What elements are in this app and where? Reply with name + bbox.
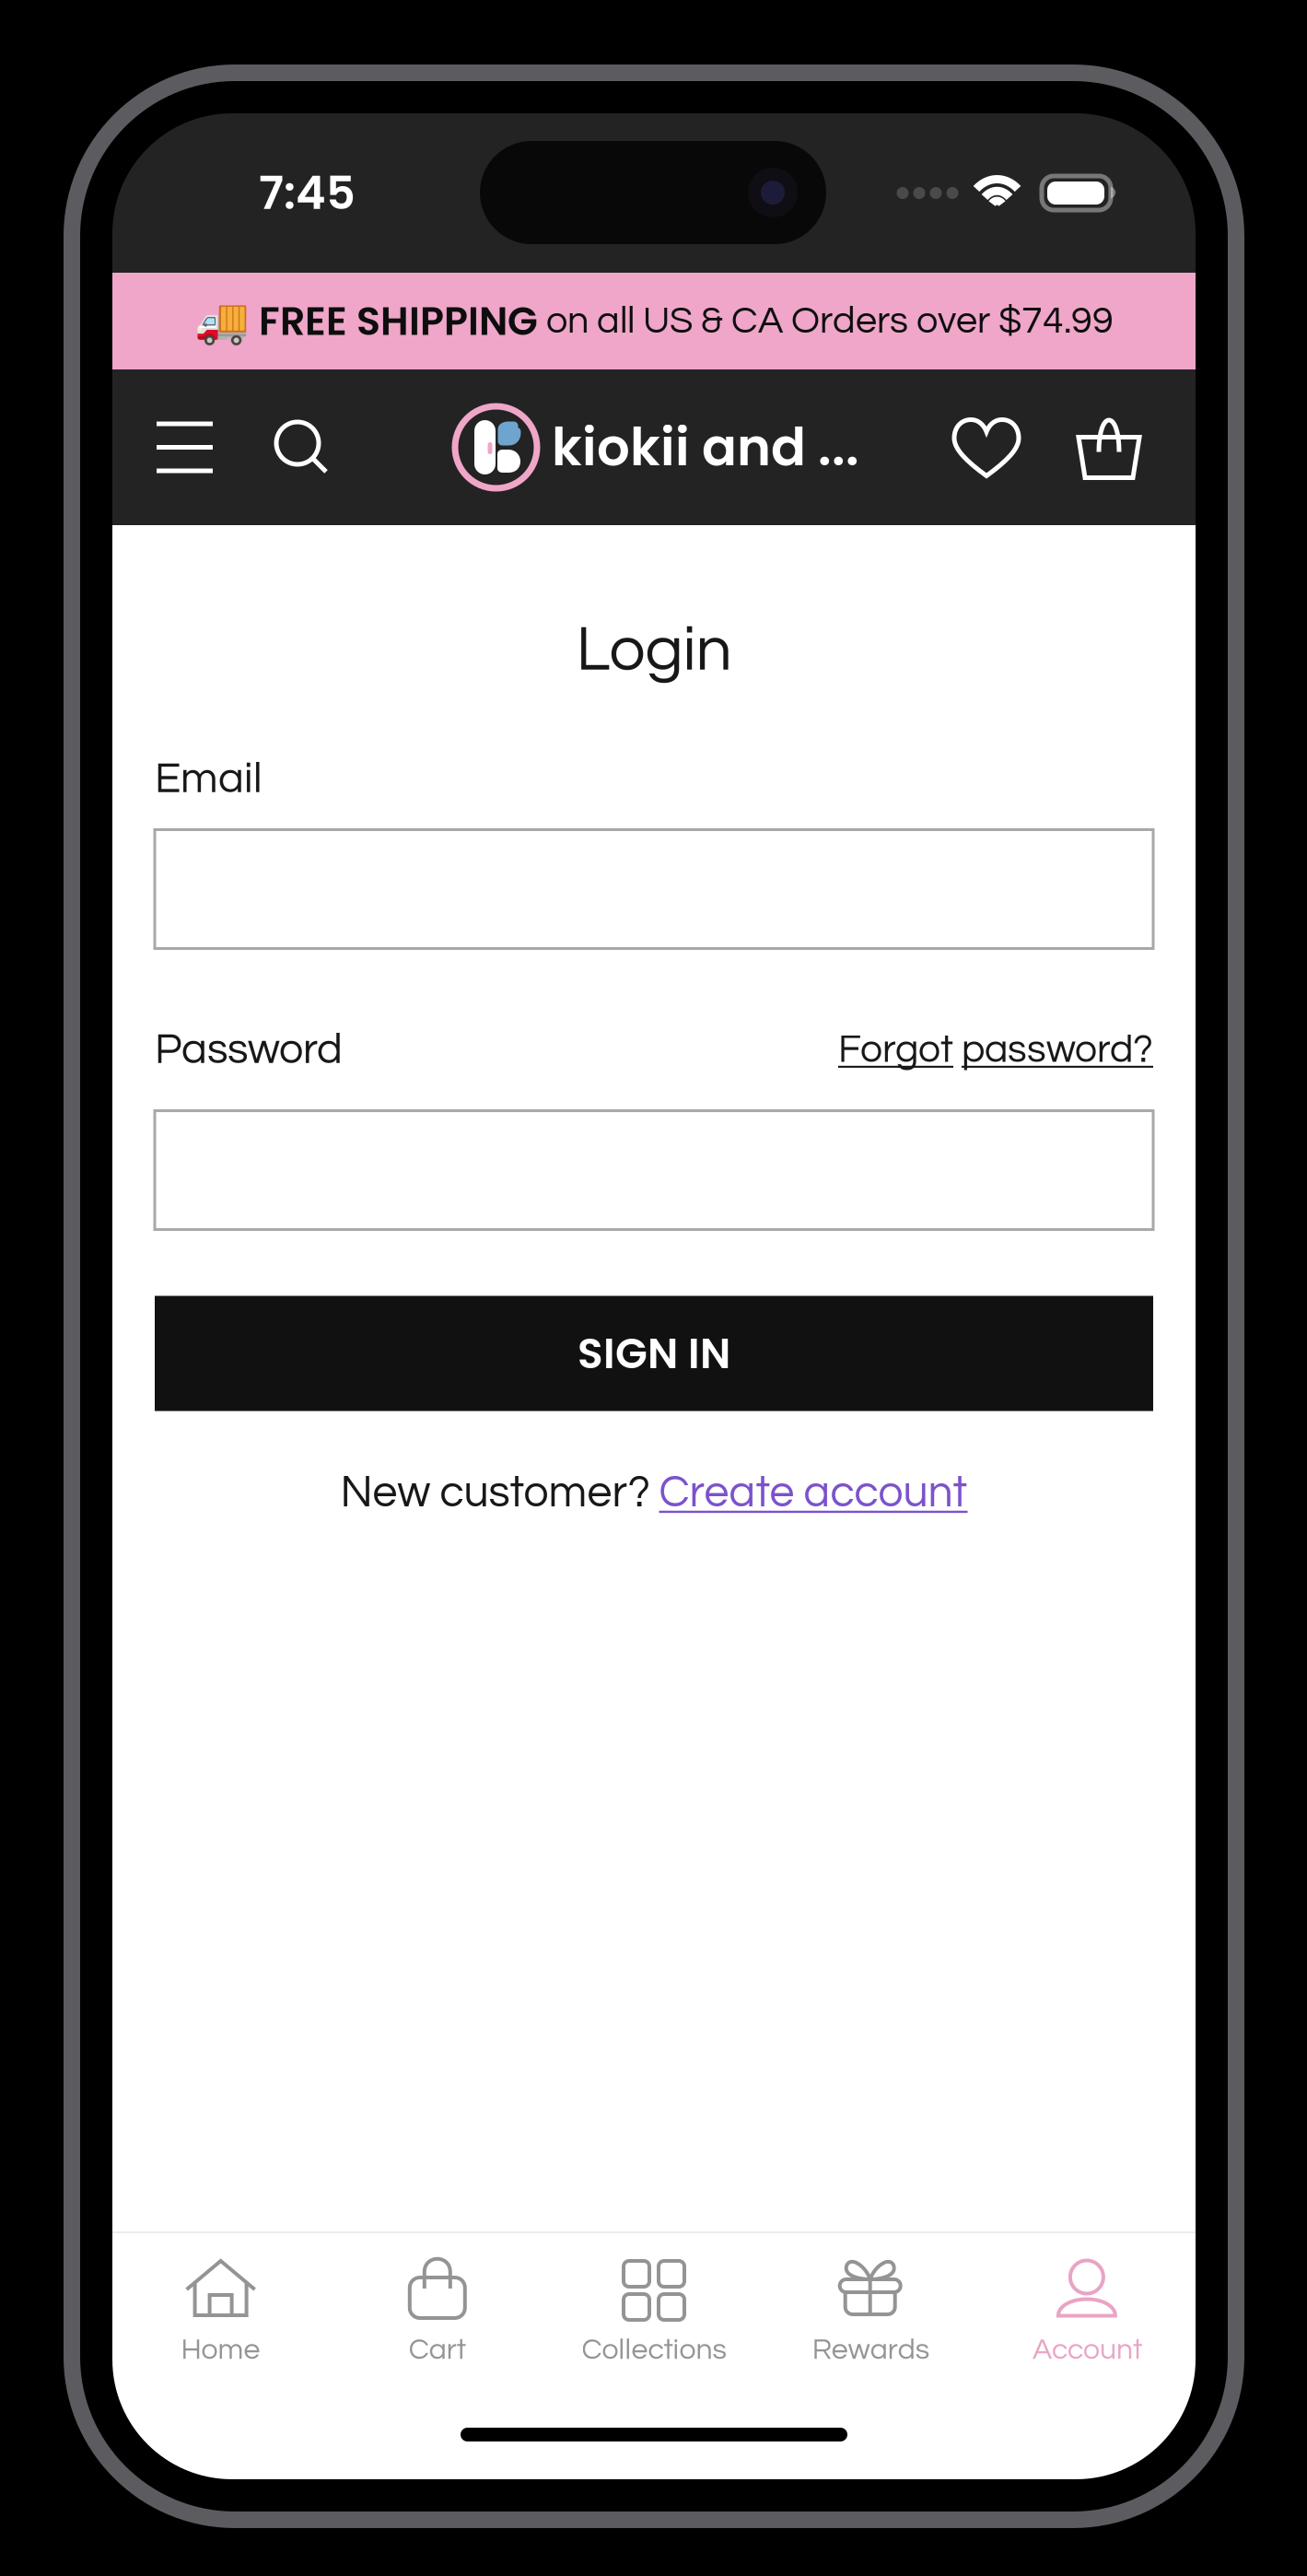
staticText: on all US & CA Orders over $74.99 xyxy=(538,301,1114,341)
button[interactable]: Create account xyxy=(659,1470,968,1515)
staticText: kiokii and ... xyxy=(552,411,859,483)
button[interactable]: Shopping bag xyxy=(1062,389,1156,505)
button[interactable]: Wishlist xyxy=(937,389,1036,505)
button[interactable]: Search xyxy=(254,391,349,504)
button[interactable]: Home xyxy=(112,2233,329,2378)
button[interactable]: Account xyxy=(979,2233,1196,2378)
staticText: New customer? xyxy=(340,1470,659,1515)
button[interactable]: Rewards xyxy=(762,2233,979,2378)
button[interactable]: Email xyxy=(155,830,1153,948)
staticText: Account xyxy=(1032,2335,1142,2365)
staticText: FREE SHIPPING xyxy=(259,294,538,349)
staticText: SIGN IN xyxy=(578,1324,730,1383)
staticText: Password xyxy=(155,1028,343,1072)
staticText xyxy=(953,1030,962,1070)
button[interactable]: Cart xyxy=(329,2233,546,2378)
staticText: 7:45 xyxy=(259,161,356,225)
staticText: Create account xyxy=(659,1470,968,1515)
button[interactable]: Menu xyxy=(136,390,233,504)
staticText: Collections xyxy=(582,2335,726,2365)
staticText: Home xyxy=(181,2335,260,2365)
button[interactable]: Forgot xyxy=(838,1030,1153,1070)
staticText: Rewards xyxy=(812,2335,929,2365)
staticText: Login xyxy=(576,617,732,683)
staticText: Email xyxy=(155,757,263,801)
button[interactable]: Collections xyxy=(546,2233,762,2378)
staticText: Cart xyxy=(409,2335,466,2365)
staticText: Forgot xyxy=(838,1030,953,1070)
button[interactable]: Password xyxy=(155,1111,1153,1229)
staticText: password? xyxy=(962,1030,1153,1070)
button[interactable]: SIGN IN xyxy=(155,1296,1153,1411)
staticText: 🚚 xyxy=(194,295,259,347)
